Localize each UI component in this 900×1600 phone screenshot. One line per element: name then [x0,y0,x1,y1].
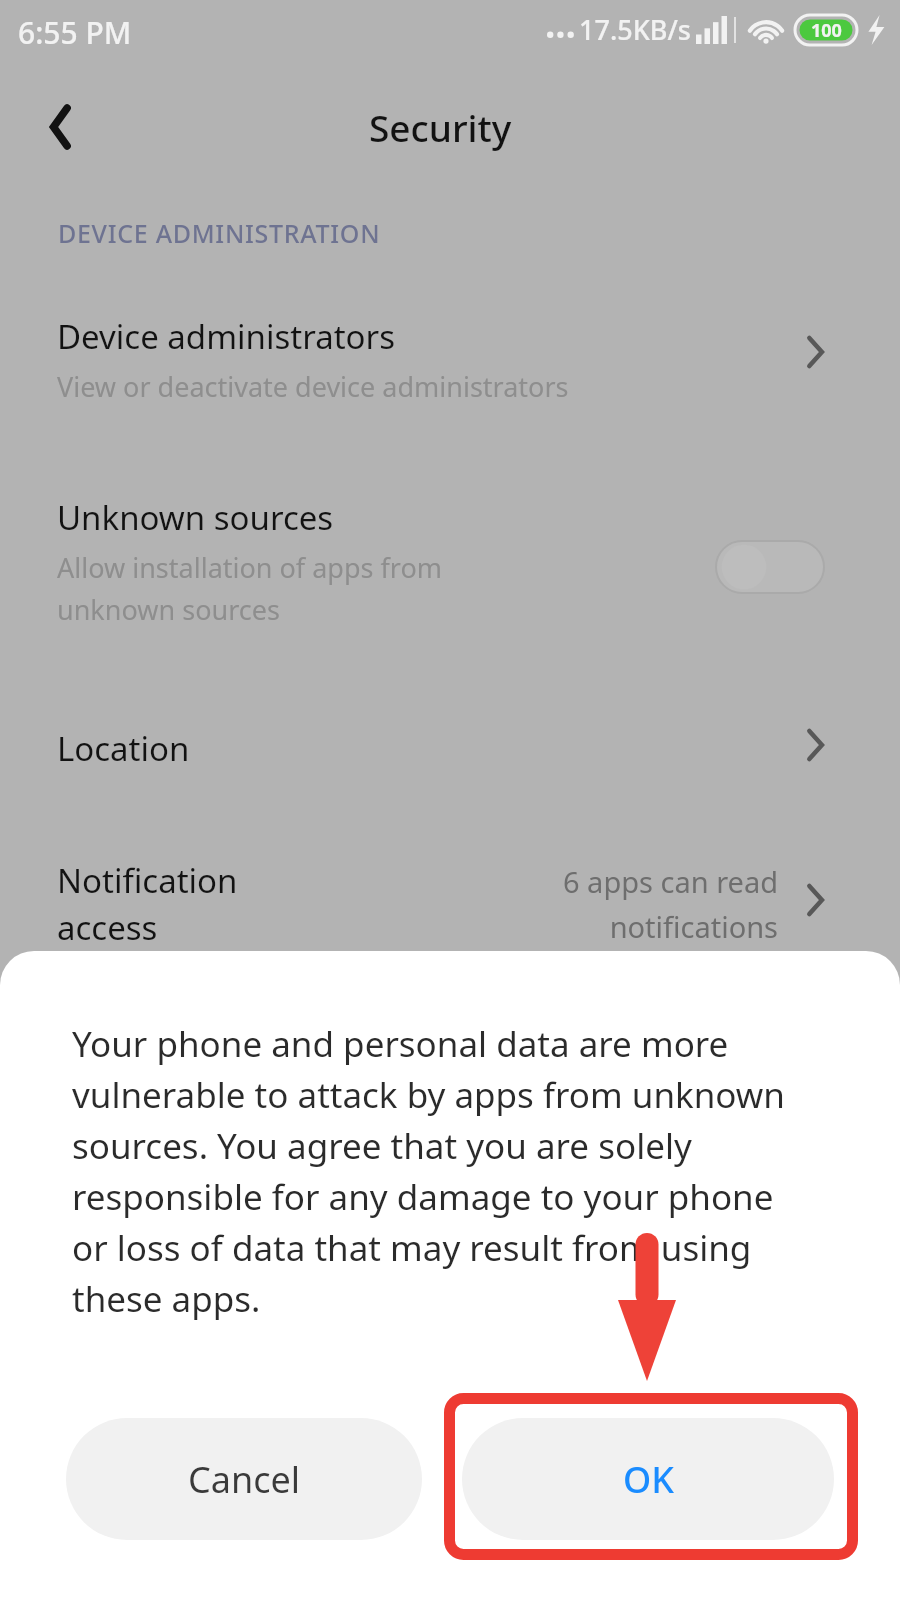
button[interactable]: Unknown sources toggle [716,541,824,593]
staticText: Allow installation of apps from unknown … [57,549,442,628]
button[interactable]: Notification access [0,838,900,968]
staticText: 17.5KB/s [579,11,691,48]
staticText: 6:55 PM [18,12,132,53]
staticText: Location [57,726,190,771]
button[interactable]: OK [462,1418,834,1540]
button[interactable]: Back [30,97,90,157]
staticText: Notification access [57,858,238,950]
staticText: 100 [811,18,842,43]
staticText: Cancel [188,1455,301,1504]
staticText: Your phone and personal data are more vu… [72,1020,812,1322]
staticText: Unknown sources [57,495,334,540]
staticText: OK [623,1455,674,1504]
button[interactable]: Device administrators [0,288,900,438]
staticText: 6 apps can read notifications [518,862,778,947]
staticText: DEVICE ADMINISTRATION [58,216,381,250]
staticText: View or deactivate device administrators [57,368,569,405]
staticText: Device administrators [57,314,395,359]
button[interactable]: Unknown sources [0,470,900,660]
staticText: Security [369,102,512,152]
button[interactable]: Location [0,700,900,812]
button[interactable]: Cancel [66,1418,422,1540]
